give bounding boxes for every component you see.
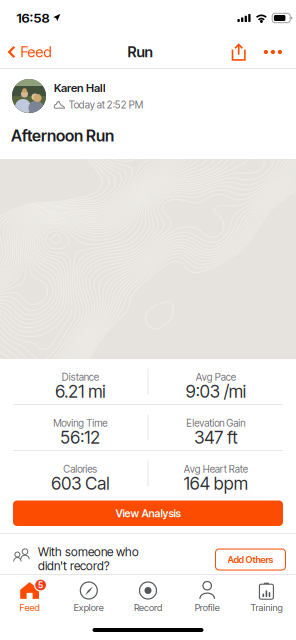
staticText: didn't record? <box>38 559 110 573</box>
button[interactable]: Explore <box>59 578 118 616</box>
staticText: Record <box>134 602 162 613</box>
staticText: 603 Cal <box>51 473 109 494</box>
button[interactable]: Training <box>237 578 296 616</box>
staticText: Training <box>250 602 282 613</box>
button[interactable]: Add Others <box>215 549 285 570</box>
staticText: Karen Hall <box>54 81 106 95</box>
staticText: Avg Heart Rate <box>184 463 248 475</box>
staticText: Feed <box>20 602 40 613</box>
button[interactable]: Record <box>118 578 178 616</box>
button[interactable]: View Analysis <box>13 500 283 526</box>
staticText: Explore <box>74 602 104 613</box>
staticText: Add Others <box>227 554 273 565</box>
staticText: 16:58 <box>16 10 49 26</box>
staticText: Profile <box>195 602 220 613</box>
staticText: Calories <box>63 463 97 475</box>
staticText: View Analysis <box>115 507 180 520</box>
button[interactable]: 5 <box>0 578 59 616</box>
button[interactable]: More options <box>255 36 291 67</box>
staticText: 5 <box>38 580 43 590</box>
staticText: 56:12 <box>60 427 100 448</box>
staticText: 9:03 /mi <box>186 381 246 402</box>
staticText: Distance <box>62 371 99 383</box>
staticText: Avg Pace <box>196 371 236 383</box>
staticText: 164 bpm <box>184 473 248 494</box>
button[interactable]: Feed <box>0 36 57 67</box>
staticText: 347 ft <box>194 427 237 448</box>
staticText: Today at 2:52 PM <box>69 99 143 111</box>
button[interactable]: Share <box>223 36 255 67</box>
staticText: Feed <box>20 43 51 61</box>
staticText: Afternoon Run <box>11 126 114 145</box>
staticText: With someone who <box>38 545 139 559</box>
staticText: Run <box>127 43 152 61</box>
button[interactable]: Profile <box>178 578 237 616</box>
staticText: 6.21 mi <box>55 381 105 402</box>
staticText: Moving Time <box>53 417 107 429</box>
staticText: Elevation Gain <box>186 417 245 429</box>
